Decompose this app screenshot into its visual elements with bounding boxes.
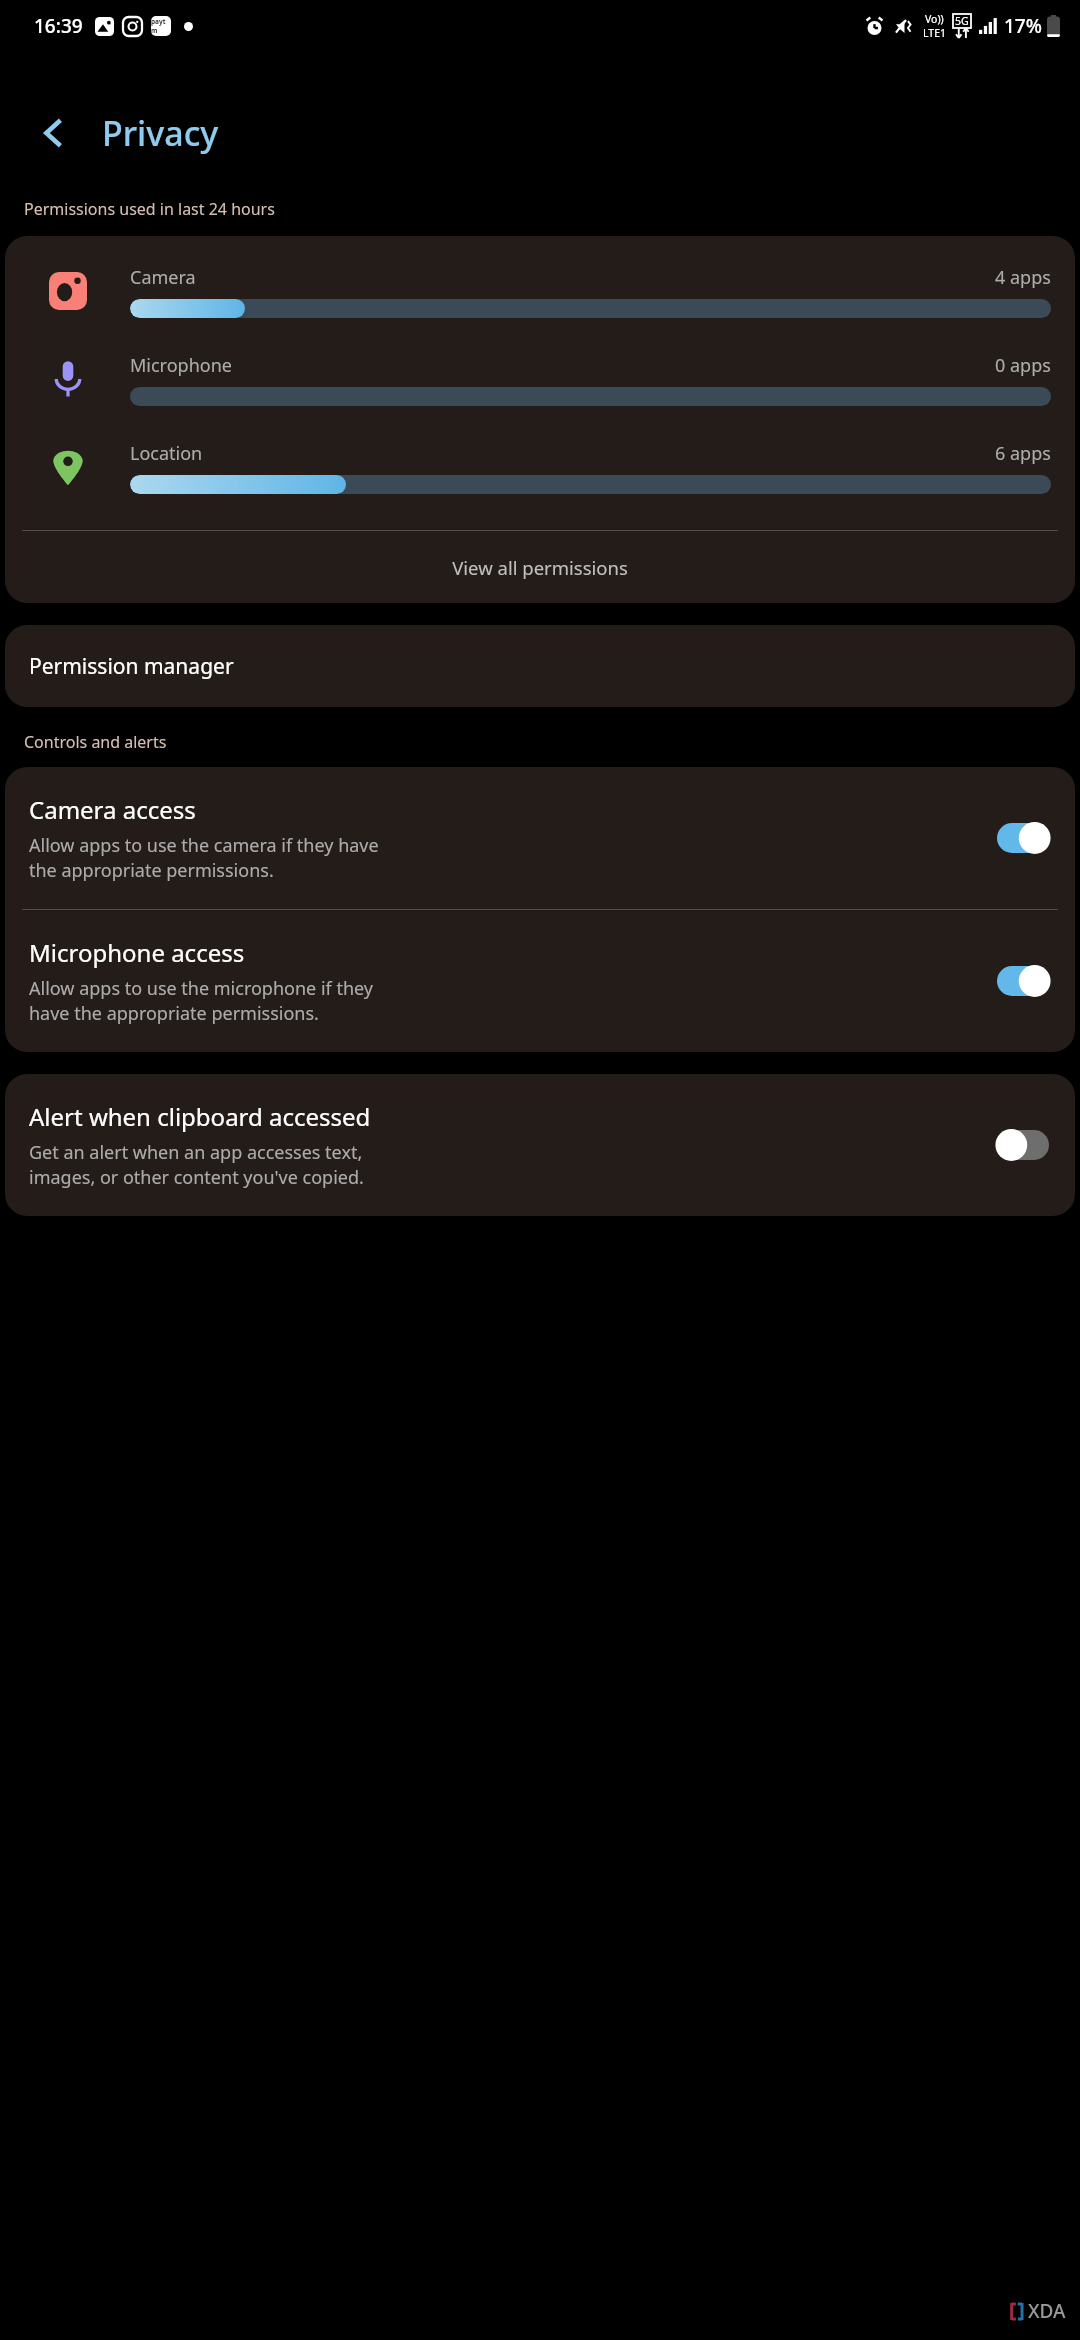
staticText: Permissions used in last 24 hours	[24, 198, 275, 220]
staticText: the appropriate permissions.	[29, 858, 274, 883]
staticText: Camera access	[29, 793, 196, 826]
other: Location	[49, 448, 87, 486]
staticText: paytm	[151, 17, 171, 35]
staticText: Allow apps to use the camera if they hav…	[29, 833, 379, 858]
other: Microphone	[49, 360, 87, 398]
staticText: 17%	[1004, 13, 1042, 39]
button[interactable]: View all permissions	[5, 531, 1075, 603]
staticText: Microphone	[130, 353, 232, 378]
button[interactable]: Camera access	[5, 767, 1075, 909]
staticText: View all permissions	[452, 555, 628, 580]
staticText: Location	[130, 441, 203, 466]
button[interactable]: Camera	[5, 258, 1075, 324]
staticText: Allow apps to use the microphone if they	[29, 976, 374, 1001]
staticText: images, or other content you've copied.	[29, 1165, 364, 1190]
staticText: XDA	[1028, 2298, 1066, 2324]
staticText: 4 apps	[995, 265, 1051, 290]
button[interactable]: Back	[26, 105, 82, 161]
staticText: Microphone access	[29, 936, 245, 969]
staticText: Alert when clipboard accessed	[29, 1100, 371, 1133]
staticText: have the appropriate permissions.	[29, 1001, 319, 1026]
staticText: 0 apps	[995, 353, 1051, 378]
staticText: Vo))	[925, 12, 944, 26]
staticText: LTE1	[923, 26, 946, 40]
button[interactable]: Microphone	[5, 346, 1075, 412]
staticText: Permission manager	[29, 652, 234, 681]
button[interactable]: Microphone access	[997, 966, 1049, 996]
staticText: Controls and alerts	[24, 731, 167, 753]
other: Camera	[49, 272, 87, 310]
button[interactable]: Location	[5, 434, 1075, 500]
staticText: Privacy	[102, 110, 219, 156]
button[interactable]: Permission manager	[5, 625, 1075, 707]
button[interactable]: Camera access	[997, 823, 1049, 853]
staticText: 6 apps	[995, 441, 1051, 466]
staticText: 5G	[955, 14, 969, 28]
staticText: Get an alert when an app accesses text,	[29, 1140, 363, 1165]
button[interactable]: Alert when clipboard accessed	[997, 1130, 1049, 1160]
button[interactable]: Alert when clipboard accessed	[5, 1074, 1075, 1216]
staticText: 16:39	[34, 13, 83, 39]
button[interactable]: Microphone access	[5, 910, 1075, 1052]
staticText: Camera	[130, 265, 196, 290]
